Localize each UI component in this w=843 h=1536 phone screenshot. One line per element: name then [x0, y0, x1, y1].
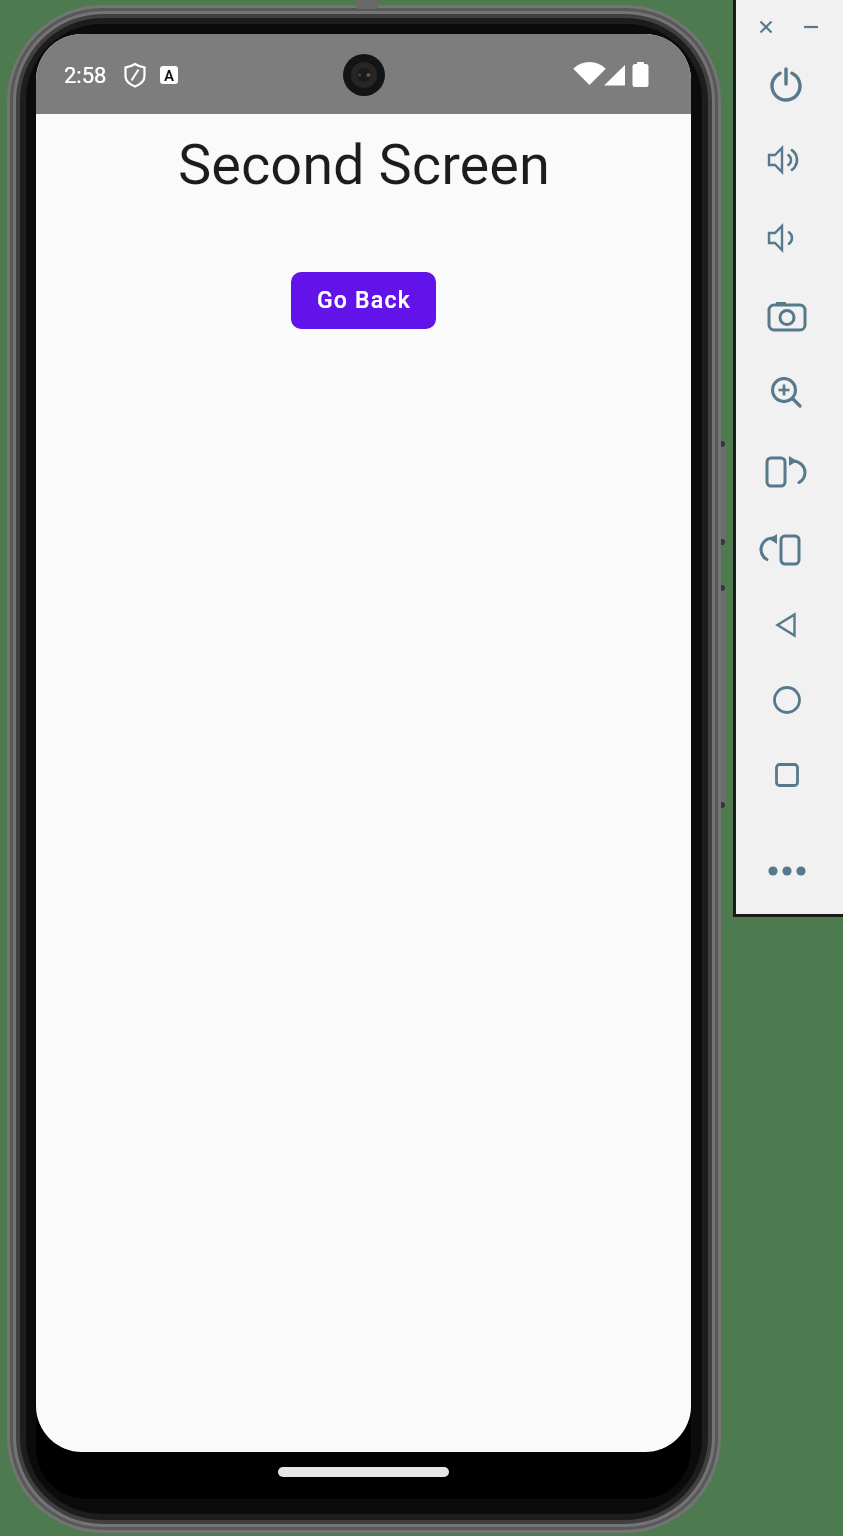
button[interactable] — [764, 676, 812, 724]
staticText: 2:58 — [64, 63, 107, 89]
button[interactable] — [764, 214, 812, 262]
button[interactable] — [764, 448, 812, 496]
staticText: A — [164, 67, 175, 85]
button[interactable] — [764, 62, 812, 110]
button[interactable] — [764, 601, 812, 649]
button[interactable] — [764, 292, 812, 340]
staticText: Go Back — [317, 287, 411, 314]
button[interactable] — [764, 136, 812, 184]
staticText: Second Screen — [178, 132, 550, 198]
button[interactable]: Go Back — [291, 272, 436, 329]
button[interactable] — [764, 526, 812, 574]
button[interactable] — [764, 751, 812, 799]
button[interactable] — [764, 370, 812, 418]
button[interactable] — [764, 847, 812, 895]
button[interactable] — [764, 3, 812, 51]
